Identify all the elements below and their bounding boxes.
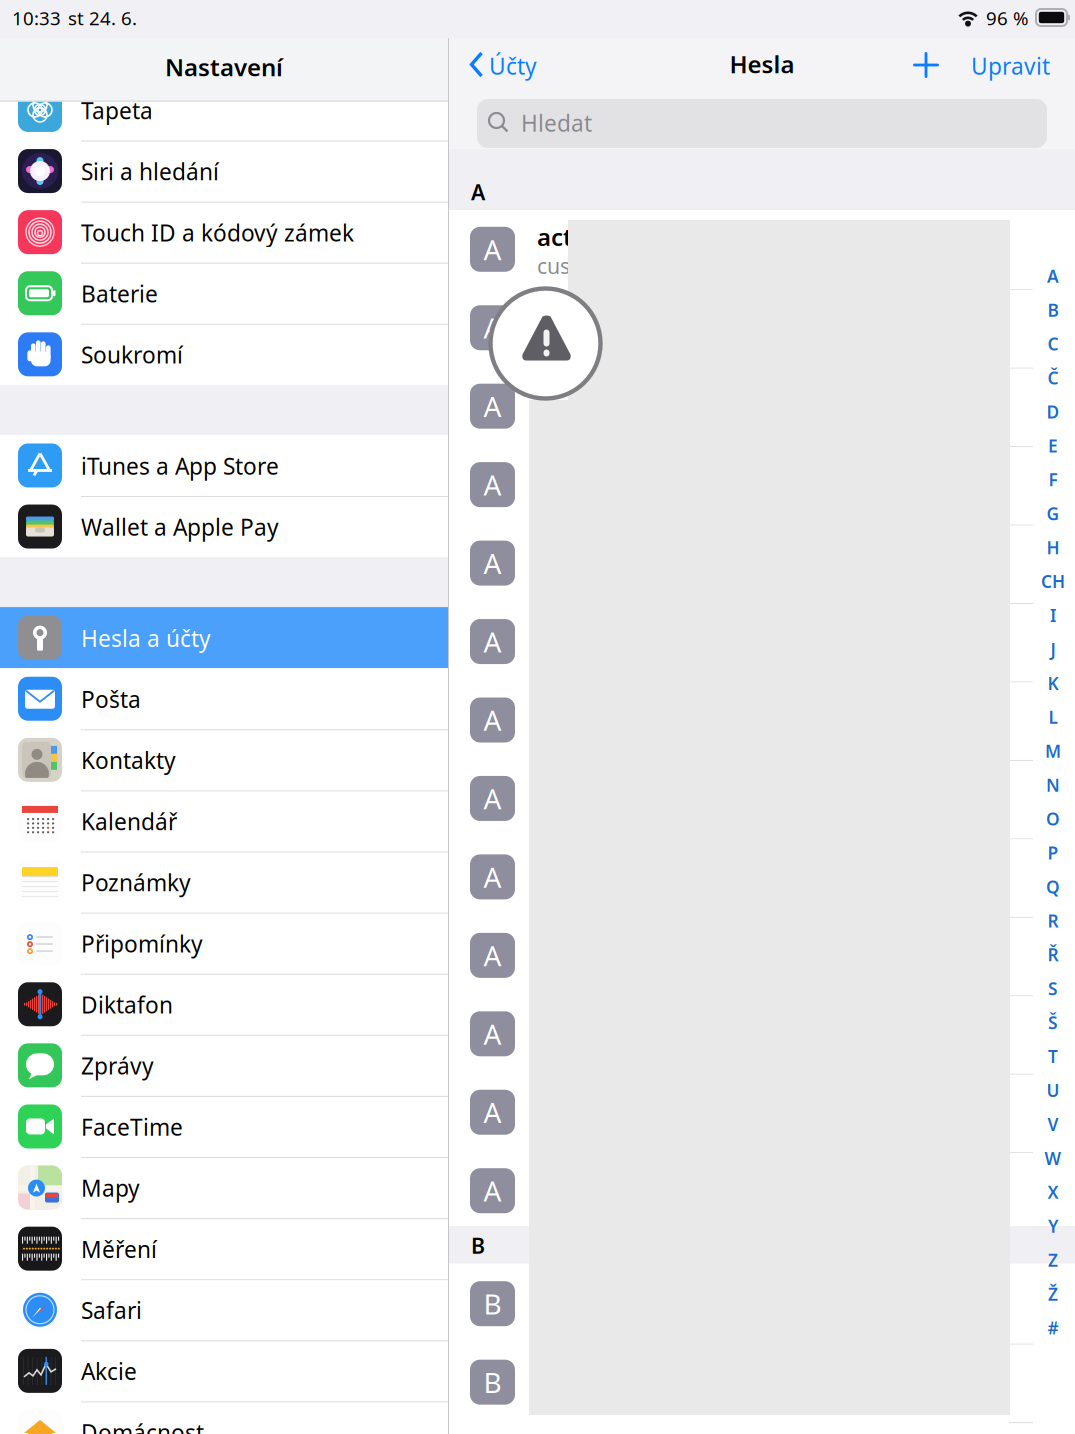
staticText: 10:33 — [12, 6, 61, 30]
button[interactable]: A — [449, 996, 1075, 1075]
button[interactable]: B — [1031, 298, 1075, 321]
staticText: G — [1046, 502, 1059, 525]
staticText: CH — [1041, 570, 1065, 593]
button[interactable]: Kontakty — [0, 729, 448, 790]
button[interactable]: K — [1031, 672, 1075, 695]
button[interactable]: Pošta — [0, 668, 448, 729]
button[interactable]: Zprávy — [0, 1035, 448, 1096]
button[interactable]: Účty — [457, 42, 587, 88]
button[interactable]: Přidat heslo — [900, 42, 952, 88]
staticText: Tapeta — [81, 95, 153, 125]
staticText: A — [483, 231, 501, 268]
button[interactable]: Poznámky — [0, 851, 448, 913]
button[interactable]: A — [449, 212, 1075, 290]
button[interactable]: Y — [1031, 1214, 1075, 1237]
button[interactable]: Safari — [0, 1279, 448, 1340]
button[interactable]: N — [1031, 773, 1075, 796]
button[interactable]: A — [449, 290, 1075, 369]
button[interactable]: Diktafon — [0, 974, 448, 1035]
staticText: Y — [1048, 1214, 1058, 1237]
button[interactable]: Kalendář — [0, 790, 448, 851]
staticText: A — [483, 858, 501, 895]
button[interactable]: A — [1031, 264, 1075, 287]
button[interactable]: Domácnost — [0, 1401, 448, 1434]
staticText: Hledat — [521, 108, 592, 138]
button[interactable]: Q — [1031, 875, 1075, 898]
staticText: A — [483, 544, 501, 582]
button[interactable]: Akcie — [0, 1340, 448, 1401]
button[interactable]: A — [449, 682, 1075, 761]
button[interactable]: G — [1031, 502, 1075, 525]
button[interactable]: Wallet a Apple Pay — [0, 496, 448, 557]
button[interactable]: Připomínky — [0, 913, 448, 974]
staticText: P — [1047, 841, 1058, 864]
staticText: Č — [1047, 366, 1058, 389]
button[interactable]: B — [449, 1266, 1075, 1345]
button[interactable]: T — [1031, 1045, 1075, 1068]
staticText: A — [471, 178, 485, 206]
button[interactable]: M — [1031, 739, 1075, 762]
button[interactable]: Siri a hledání — [0, 140, 448, 202]
button[interactable]: Ž — [1031, 1282, 1075, 1305]
button[interactable]: Baterie — [0, 263, 448, 324]
staticText: # — [1047, 1316, 1058, 1339]
button[interactable]: V — [1031, 1113, 1075, 1136]
button[interactable]: Touch ID a kódový zámek — [0, 202, 448, 263]
button[interactable]: A — [449, 447, 1075, 526]
button[interactable]: R — [1031, 909, 1075, 932]
staticText: cust — [537, 252, 578, 280]
button[interactable]: J — [1031, 638, 1075, 661]
staticText: A — [483, 780, 501, 817]
button[interactable]: C — [1031, 332, 1075, 355]
button[interactable]: A — [449, 604, 1075, 682]
staticText: A — [483, 623, 501, 660]
button[interactable]: L — [1031, 706, 1075, 729]
button[interactable]: E — [1031, 434, 1075, 457]
button[interactable]: Měření — [0, 1218, 448, 1279]
button[interactable]: # — [1031, 1316, 1075, 1339]
button[interactable]: Š — [1031, 1011, 1075, 1034]
button[interactable]: A — [449, 918, 1075, 996]
staticText: A — [483, 309, 501, 346]
button[interactable]: Tapeta — [0, 79, 448, 140]
staticText: Akcie — [81, 1356, 137, 1386]
button[interactable]: Ř — [1031, 943, 1075, 966]
button[interactable]: S — [1031, 977, 1075, 1000]
staticText: X — [1047, 1181, 1058, 1204]
button[interactable]: Mapy — [0, 1157, 448, 1218]
button[interactable]: A — [449, 526, 1075, 604]
staticText: Pošta — [81, 684, 141, 714]
button[interactable]: W — [1031, 1147, 1075, 1170]
button[interactable]: A — [449, 1075, 1075, 1153]
button[interactable]: Č — [1031, 366, 1075, 389]
button[interactable]: Z — [1031, 1248, 1075, 1271]
button[interactable]: Soukromí — [0, 324, 448, 385]
button[interactable]: A — [449, 839, 1075, 918]
button[interactable]: CH — [1031, 570, 1075, 593]
button[interactable]: F — [1031, 468, 1075, 491]
staticText: R — [1047, 909, 1058, 932]
button[interactable]: X — [1031, 1181, 1075, 1204]
staticText: Q — [1046, 875, 1060, 898]
button[interactable]: I — [1031, 604, 1075, 627]
button[interactable]: A — [449, 1153, 1075, 1232]
button[interactable]: FaceTime — [0, 1096, 448, 1157]
staticText: Hesla a účty — [81, 623, 211, 653]
button[interactable]: Hesla a účty — [0, 607, 448, 668]
button[interactable]: U — [1031, 1079, 1075, 1102]
button[interactable]: Upravit — [958, 42, 1070, 88]
staticText: E — [1048, 434, 1058, 457]
button[interactable]: A — [449, 761, 1075, 839]
button[interactable]: D — [1031, 400, 1075, 423]
staticText: B — [483, 1285, 501, 1322]
staticText: L — [1048, 706, 1057, 729]
staticText: Měření — [81, 1234, 157, 1264]
staticText: A — [1047, 264, 1059, 287]
button[interactable]: A — [449, 369, 1075, 447]
staticText: Kalendář — [81, 806, 177, 836]
button[interactable]: P — [1031, 841, 1075, 864]
button[interactable]: H — [1031, 536, 1075, 559]
button[interactable]: B — [449, 1345, 1075, 1423]
button[interactable]: iTunes a App Store — [0, 435, 448, 496]
button[interactable]: O — [1031, 807, 1075, 830]
